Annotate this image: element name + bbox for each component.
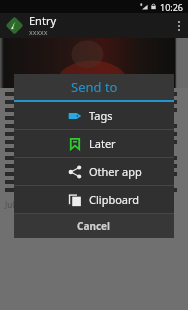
button[interactable]: Send bbox=[111, 199, 130, 210]
button[interactable]: Later bbox=[14, 130, 174, 157]
button[interactable]: More options bbox=[170, 13, 188, 38]
button[interactable]: Clipboard bbox=[14, 186, 174, 213]
button[interactable]: Other app bbox=[14, 158, 174, 185]
staticText: Send to bbox=[71, 78, 118, 96]
staticText: Send bbox=[111, 199, 130, 210]
staticText: Site bbox=[91, 199, 105, 210]
staticText: Cancel bbox=[77, 219, 111, 233]
staticText: Other app bbox=[89, 164, 142, 179]
button[interactable]: App icon bbox=[5, 16, 24, 35]
button[interactable]: Tags bbox=[14, 102, 174, 129]
staticText: Later bbox=[89, 136, 116, 151]
staticText: Tags bbox=[89, 108, 113, 123]
button[interactable]: Cancel bbox=[14, 214, 174, 238]
staticText: 10:26 bbox=[160, 1, 184, 13]
staticText: July 11, 2014 9:55 AM bbox=[5, 199, 85, 210]
staticText: Clipboard bbox=[89, 192, 140, 207]
button[interactable]: Site bbox=[91, 199, 105, 210]
staticText: Entry bbox=[29, 13, 57, 28]
staticText: xxxxx bbox=[29, 28, 48, 38]
